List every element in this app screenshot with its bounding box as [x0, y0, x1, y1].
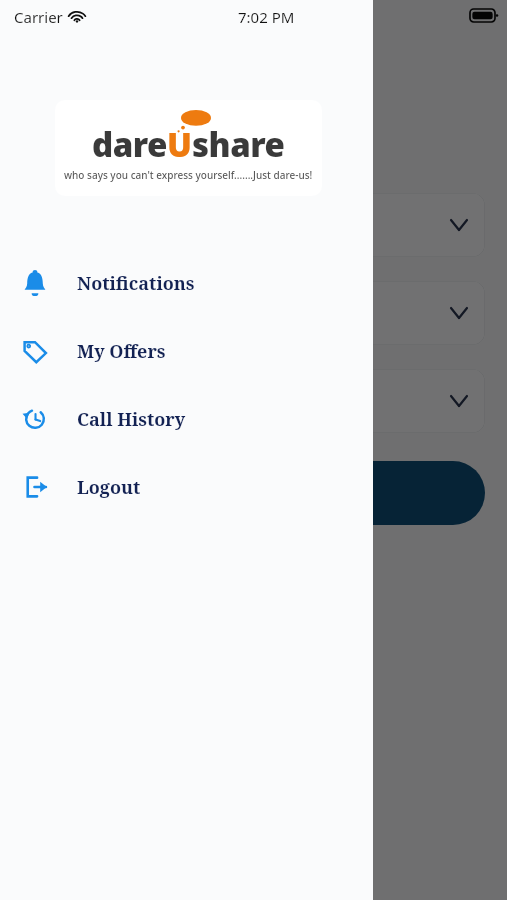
- other: Expand: [451, 308, 467, 318]
- button[interactable]: [373, 0, 507, 900]
- button[interactable]: Continue: [22, 461, 485, 525]
- button[interactable]: Call History: [0, 385, 373, 453]
- other: Logout: [22, 474, 48, 500]
- staticText: 7:02 PM: [238, 7, 295, 27]
- button[interactable]: Notifications: [0, 249, 373, 317]
- other: Notifications: [22, 270, 48, 296]
- button[interactable]: My Offers: [0, 317, 373, 385]
- button[interactable]: Expand: [22, 193, 485, 257]
- staticText: Notifications: [77, 271, 195, 296]
- staticText: share: [192, 122, 285, 167]
- other: Expand: [451, 220, 467, 230]
- other: Expand: [451, 396, 467, 406]
- staticText: U: [167, 122, 192, 167]
- staticText: Call History: [77, 407, 186, 432]
- staticText: Carrier: [14, 7, 63, 27]
- button[interactable]: Expand: [22, 281, 485, 345]
- staticText: Logout: [77, 475, 141, 500]
- button[interactable]: Logout: [0, 453, 373, 521]
- button[interactable]: Expand: [22, 369, 485, 433]
- staticText: dare: [92, 122, 167, 167]
- staticText: who says you can't express yourself.....…: [64, 168, 313, 182]
- other: My Offers: [22, 338, 48, 364]
- staticText: Select a service please: [22, 128, 256, 157]
- other: Call History: [22, 406, 48, 432]
- staticText: My Offers: [77, 339, 166, 364]
